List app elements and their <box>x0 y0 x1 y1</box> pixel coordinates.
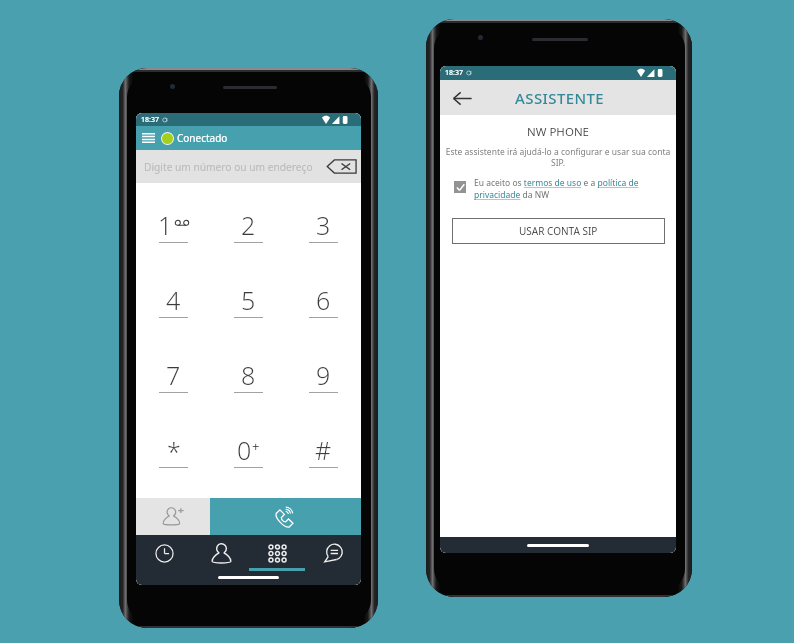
button[interactable]: 7 <box>136 343 211 418</box>
staticText: 4 <box>166 283 181 317</box>
staticText: 3 <box>316 208 331 242</box>
staticText: 0 <box>237 433 252 467</box>
staticText: * <box>167 434 181 468</box>
staticText: Este assistente irá ajudá-lo a configura… <box>445 146 671 168</box>
button[interactable]: 8 <box>211 343 286 418</box>
button[interactable]: Open menu <box>142 131 155 145</box>
staticText: 5 <box>241 283 256 317</box>
staticText: Eu aceito os termos de uso e a política … <box>474 177 666 201</box>
button[interactable]: Backspace <box>324 150 358 183</box>
staticText: NW PHONE <box>440 124 676 140</box>
button[interactable]: 0 <box>211 418 286 493</box>
staticText: 1 <box>158 208 173 242</box>
staticText: ASSISTENTE <box>515 88 605 108</box>
button[interactable]: * <box>136 418 211 493</box>
button[interactable]: 9 <box>286 343 361 418</box>
button[interactable]: # <box>286 418 361 493</box>
button[interactable]: I accept the terms <box>454 181 466 193</box>
staticText: 18:37 <box>445 68 463 78</box>
button[interactable]: USAR CONTA SIP <box>452 218 665 244</box>
button[interactable]: 5 <box>211 268 286 343</box>
staticText: 6 <box>316 283 331 317</box>
button[interactable]: Contacts <box>193 535 249 571</box>
button[interactable]: Digite um número ou um endereço <box>136 150 361 183</box>
button[interactable]: 2 <box>211 193 286 268</box>
staticText: 2 <box>241 208 256 242</box>
button[interactable]: 4 <box>136 268 211 343</box>
staticText: 18:37 <box>141 115 159 125</box>
staticText: Conectado <box>177 131 228 145</box>
staticText: 9 <box>316 358 331 392</box>
button[interactable]: 1 <box>136 193 211 268</box>
button[interactable]: Back <box>451 87 473 109</box>
staticText: USAR CONTA SIP <box>519 224 598 238</box>
button[interactable]: Call <box>210 498 361 535</box>
staticText: + <box>252 437 260 455</box>
button[interactable]: 6 <box>286 268 361 343</box>
button[interactable]: Add contact <box>136 498 210 535</box>
staticText: 8 <box>241 358 256 392</box>
button[interactable]: Dialpad <box>249 535 305 571</box>
staticText: Digite um número ou um endereço <box>144 160 313 174</box>
staticText: # <box>315 433 332 467</box>
button[interactable]: Messages <box>305 535 361 571</box>
staticText: 7 <box>166 358 181 392</box>
button[interactable]: 3 <box>286 193 361 268</box>
button[interactable]: Recents <box>136 535 193 571</box>
button[interactable]: Open menu <box>136 126 361 150</box>
